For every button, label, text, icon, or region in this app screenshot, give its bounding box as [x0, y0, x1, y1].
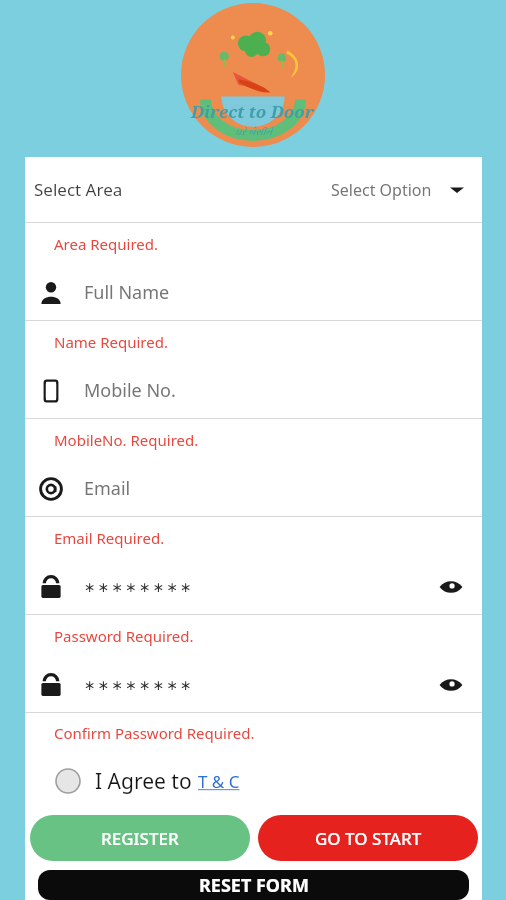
staticText: Direct to Door: [191, 100, 315, 123]
button[interactable]: Email Required.: [25, 517, 482, 614]
button[interactable]: T & C: [198, 770, 240, 793]
staticText: Password Required.: [54, 626, 194, 646]
button[interactable]: Area Required.: [25, 223, 482, 320]
staticText: ∗∗∗∗∗∗∗∗: [84, 677, 194, 693]
button[interactable]: Select Area: [25, 157, 482, 222]
button[interactable]: RESET FORM: [38, 870, 469, 900]
staticText: GO TO START: [315, 827, 422, 850]
staticText: Name Required.: [54, 332, 168, 352]
staticText: Confirm Password Required.: [54, 723, 255, 743]
button[interactable]: Show password: [438, 672, 464, 698]
button[interactable]: Password Required.: [25, 615, 482, 712]
staticText: T & C: [198, 770, 240, 793]
staticText: REGISTER: [101, 827, 179, 850]
staticText: ઘરે બેસીને: [235, 125, 272, 137]
staticText: RESET FORM: [199, 873, 309, 898]
staticText: Full Name: [84, 280, 170, 305]
staticText: ∗∗∗∗∗∗∗∗: [84, 579, 194, 595]
button[interactable]: REGISTER: [30, 815, 250, 861]
button[interactable]: I Agree to: [25, 753, 482, 809]
staticText: MobileNo. Required.: [54, 430, 199, 450]
staticText: Email Required.: [54, 528, 165, 548]
staticText: Area Required.: [54, 234, 159, 254]
button[interactable]: GO TO START: [258, 815, 478, 861]
button[interactable]: Show password: [438, 574, 464, 600]
button[interactable]: MobileNo. Required.: [25, 419, 482, 516]
staticText: Select Area: [34, 178, 123, 201]
staticText: Mobile No.: [84, 378, 176, 403]
staticText: Select Option: [331, 179, 432, 201]
staticText: I Agree to: [95, 767, 198, 796]
button[interactable]: Name Required.: [25, 321, 482, 418]
staticText: Email: [84, 476, 131, 501]
